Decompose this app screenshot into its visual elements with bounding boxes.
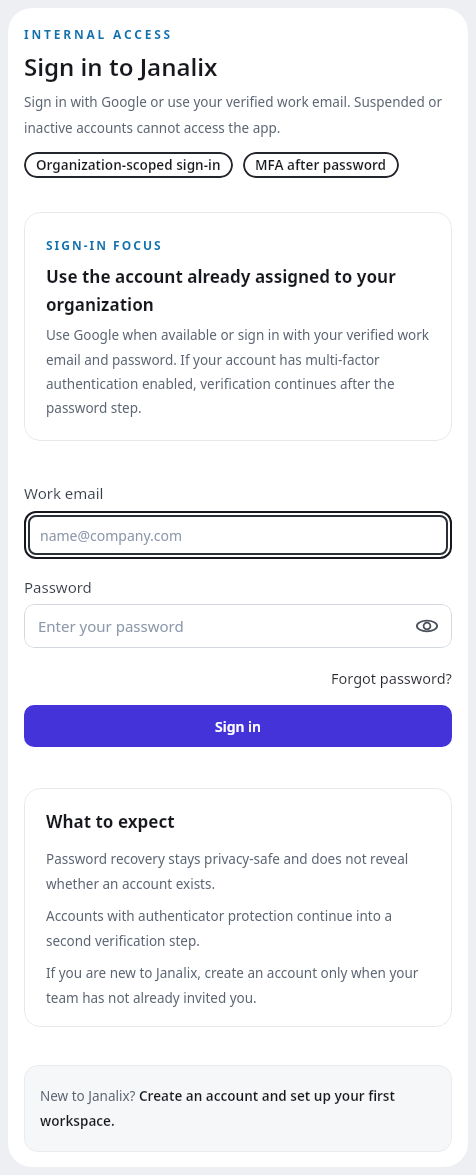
button[interactable]: name@company.com [28,515,448,555]
staticText: Accounts with authenticator protection c… [46,907,392,950]
staticText: Work email [24,483,104,503]
staticText: Forgot password? [331,668,452,688]
button[interactable]: Organization-scoped sign-in [24,152,233,178]
staticText: MFA after password [255,156,387,174]
button[interactable]: New to Janalix? Create an account and se… [24,1065,452,1152]
button[interactable]: Sign in [24,705,452,747]
staticText: INTERNAL ACCESS [24,26,174,42]
staticText: Sign in [215,717,261,736]
staticText: What to expect [46,810,175,833]
staticText: Sign in with Google or use your verified… [24,93,442,137]
staticText: Organization-scoped sign-in [36,156,221,174]
staticText: name@company.com [40,526,183,545]
staticText: Sign in to Janalix [24,50,218,83]
button[interactable]: Forgot password? [331,668,452,688]
staticText: If you are new to Janalix, create an acc… [46,964,419,1007]
staticText: Password recovery stays privacy-safe and… [46,850,409,893]
staticText: Enter your password [38,616,184,636]
staticText: New to Janalix? Create an account and se… [40,1087,395,1130]
staticText: Use Google when available or sign in wit… [46,326,430,417]
staticText: Use the account already assigned to your… [46,265,396,316]
button[interactable]: Enter your password [24,604,452,648]
staticText: SIGN-IN FOCUS [46,237,163,253]
button[interactable]: MFA after password [243,152,399,178]
staticText: Password [24,577,92,597]
